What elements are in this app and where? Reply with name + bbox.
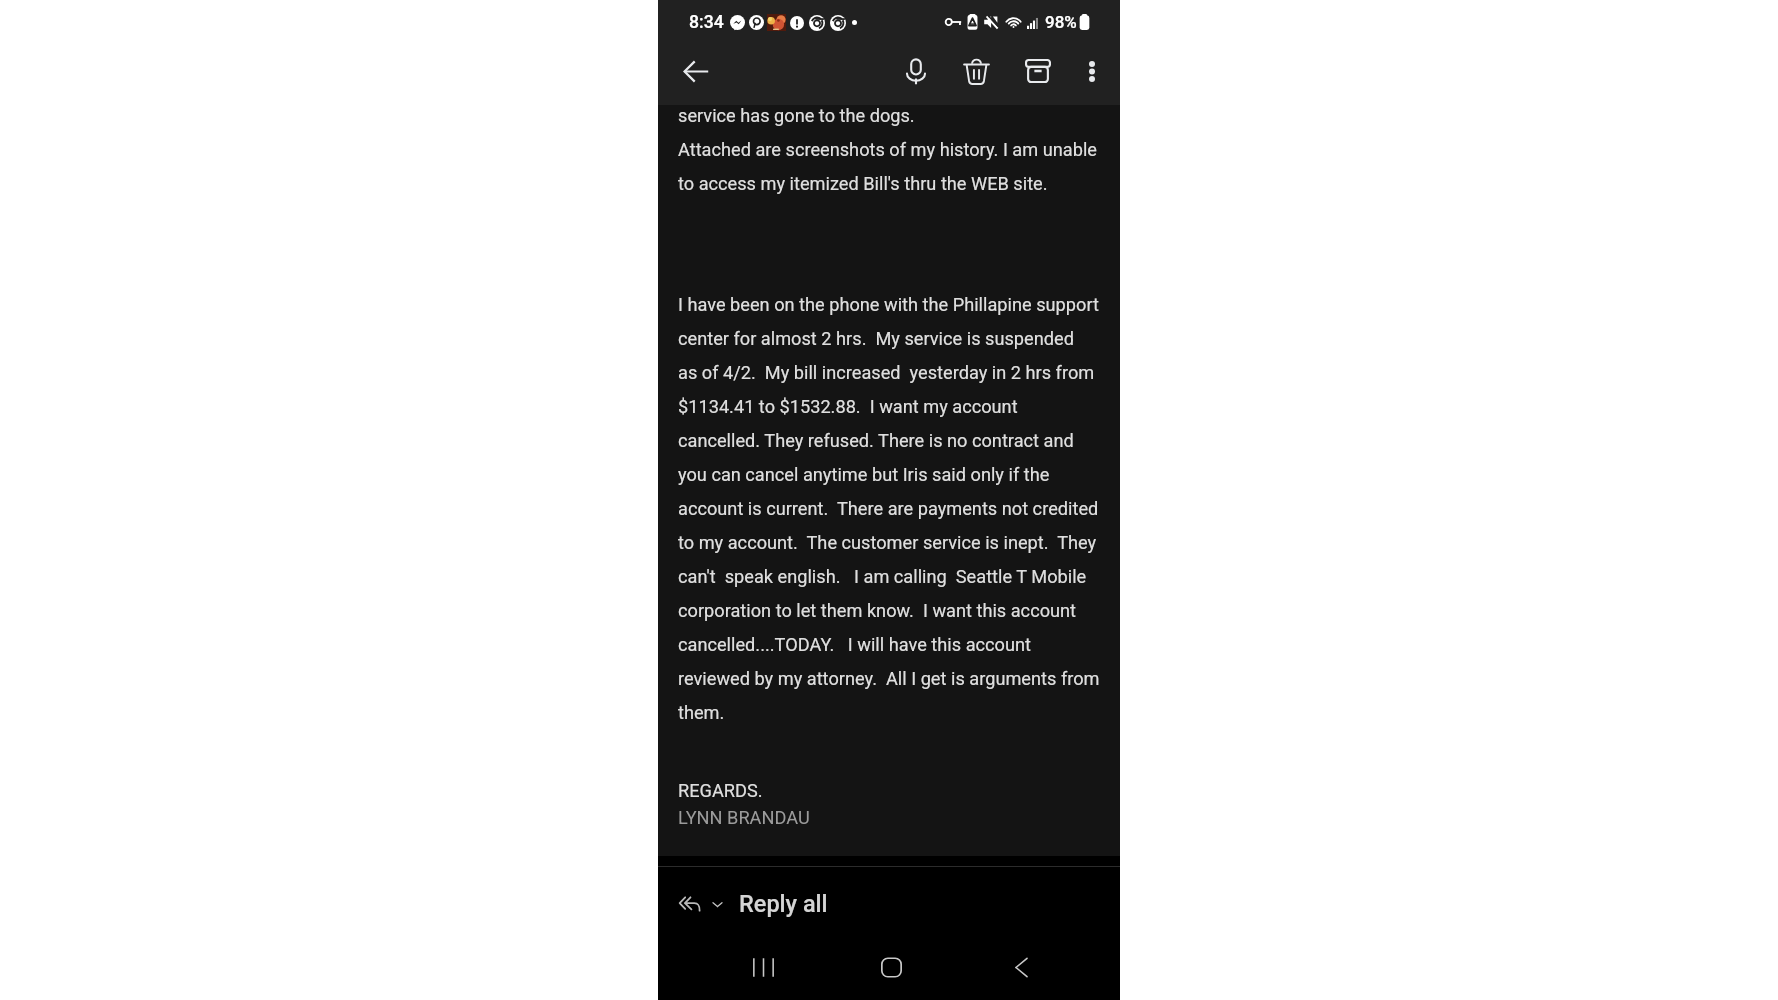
staticText: I have been on the phone with the Philla… <box>678 284 1099 318</box>
staticText: Reply all <box>739 890 828 918</box>
staticText: REGARDS. <box>678 776 763 803</box>
button[interactable]: Back <box>997 943 1045 991</box>
staticText: to access my itemized Bill's thru the WE… <box>678 163 1048 197</box>
staticText: account is current. There are payments n… <box>678 488 1099 522</box>
button[interactable]: More options <box>1070 49 1114 93</box>
button[interactable]: Recent apps <box>739 943 787 991</box>
staticText: as of 4/2. My bill increased yesterday i… <box>678 352 1095 386</box>
staticText: Attached are screenshots of my history. … <box>678 129 1097 163</box>
button[interactable]: Archive <box>1016 49 1060 93</box>
staticText: them. <box>678 692 725 726</box>
staticText: corporation to let them know. I want thi… <box>678 590 1077 624</box>
staticText: center for almost 2 hrs. My service is s… <box>678 318 1074 352</box>
staticText: 98% <box>1045 12 1077 32</box>
staticText: $1134.41 to $1532.88. I want my account <box>678 386 1018 420</box>
staticText: cancelled....TODAY. I will have this acc… <box>678 624 1031 658</box>
staticText: 8:34 <box>689 12 724 33</box>
staticText: reviewed by my attorney. All I get is ar… <box>678 658 1100 692</box>
button[interactable]: Back <box>674 49 718 93</box>
staticText: you can cancel anytime but Iris said onl… <box>678 454 1050 488</box>
button[interactable]: Reply all <box>666 880 840 928</box>
staticText: LYNN BRANDAU <box>678 803 810 830</box>
button[interactable]: Home <box>867 943 915 991</box>
staticText: service has gone to the dogs. <box>678 95 915 129</box>
staticText: to my account. The customer service is i… <box>678 522 1097 556</box>
button[interactable]: Voice search <box>894 49 938 93</box>
staticText: cancelled. They refused. There is no con… <box>678 420 1074 454</box>
staticText: can't speak english. I am calling Seattl… <box>678 556 1087 590</box>
button[interactable]: Delete <box>954 49 998 93</box>
